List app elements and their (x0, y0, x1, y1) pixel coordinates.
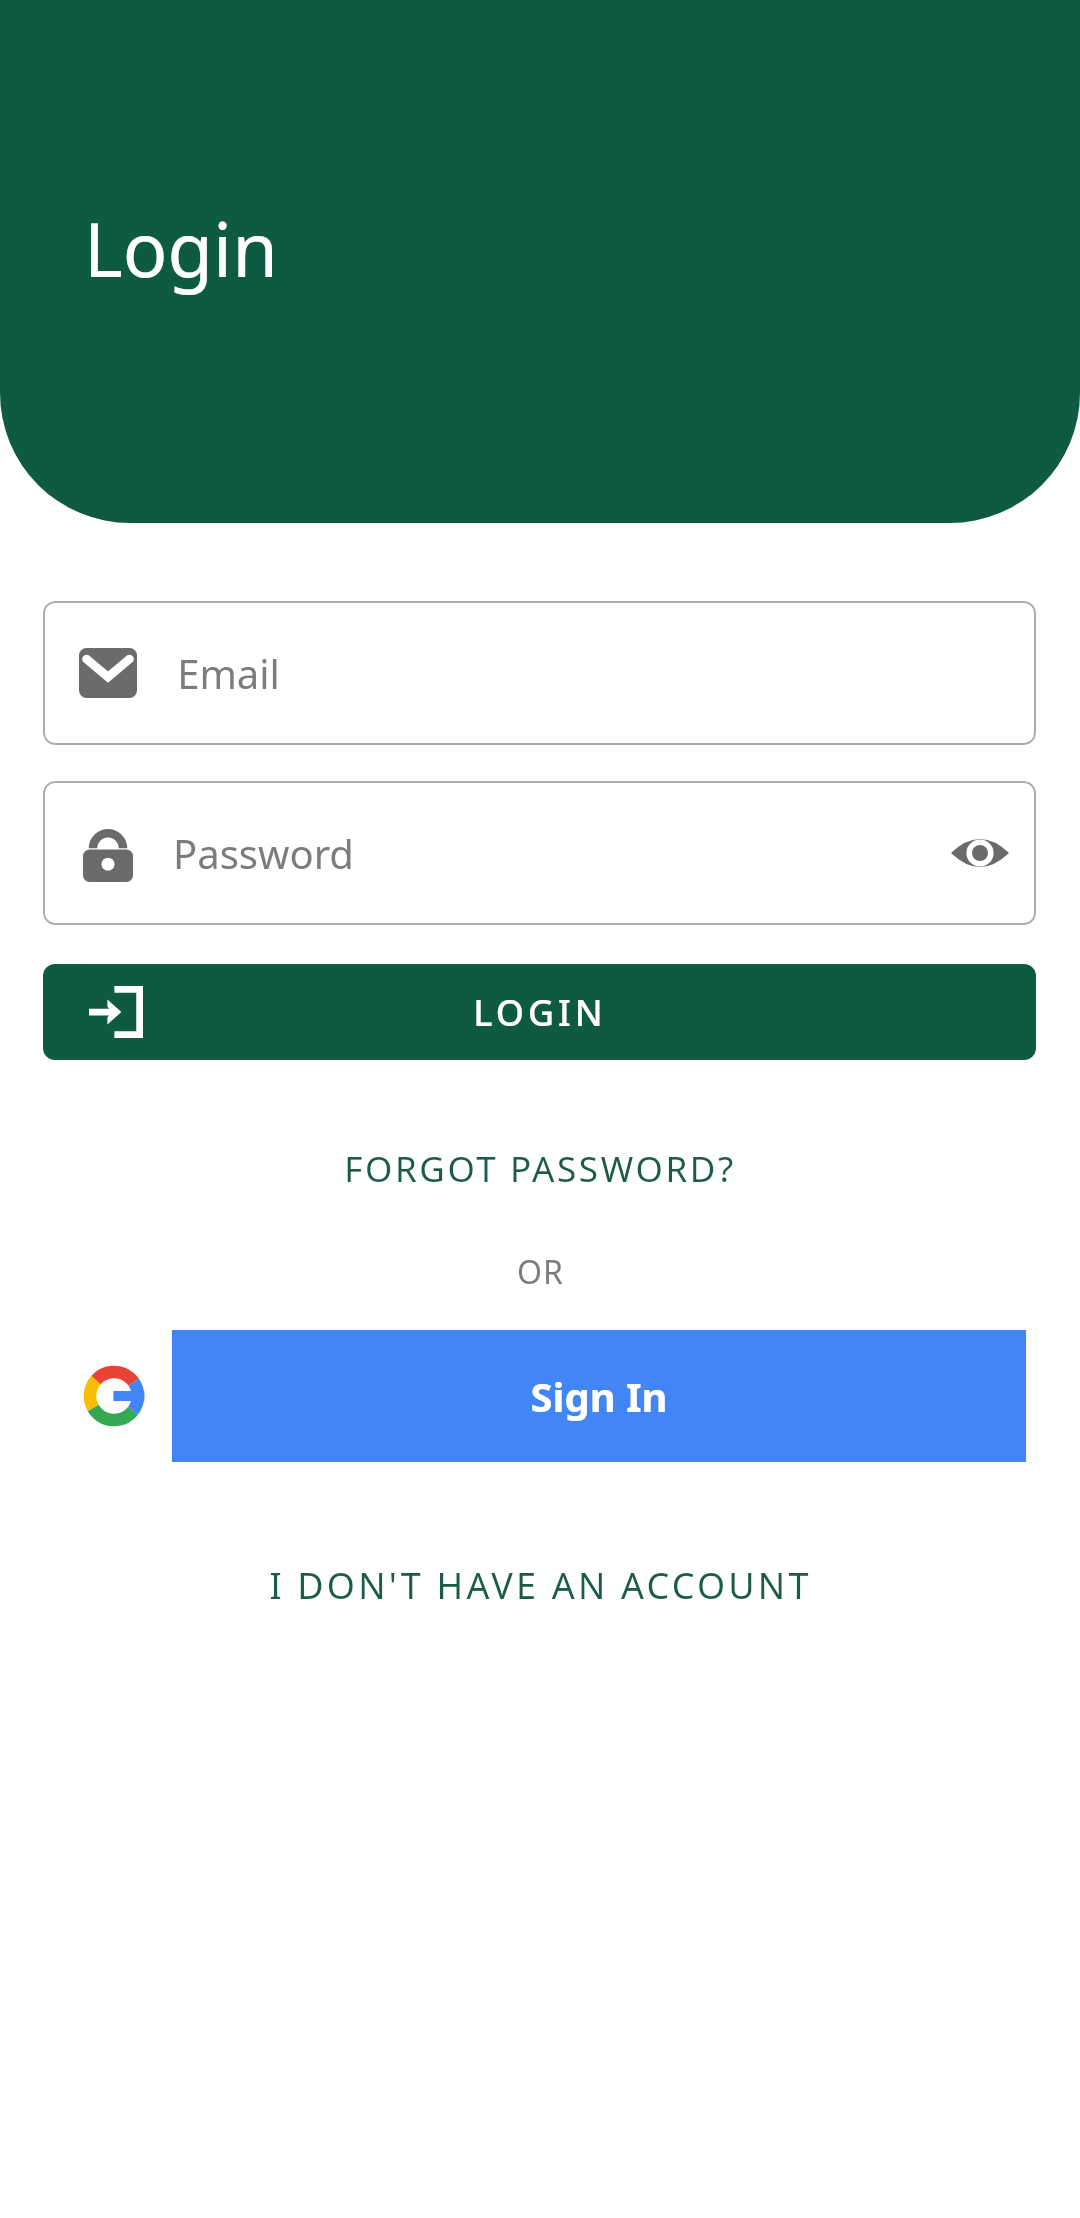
button[interactable]: Password (43, 781, 1036, 925)
button[interactable]: LOGIN (43, 964, 1036, 1060)
button[interactable]: FORGOT PASSWORD? (0, 1128, 1080, 1210)
staticText: Password (173, 826, 354, 880)
button[interactable]: I DON'T HAVE AN ACCOUNT (0, 1543, 1080, 1627)
staticText: OR (517, 1250, 564, 1294)
staticText: Email (177, 646, 280, 700)
staticText: LOGIN (473, 988, 607, 1037)
button[interactable]: Sign In (55, 1330, 1026, 1462)
staticText: I DON'T HAVE AN ACCOUNT (269, 1561, 812, 1610)
staticText: Login (84, 198, 278, 299)
button[interactable]: Show password (934, 807, 1026, 899)
staticText: Sign In (530, 1369, 668, 1423)
staticText: FORGOT PASSWORD? (344, 1145, 736, 1193)
button[interactable]: Email (43, 601, 1036, 745)
